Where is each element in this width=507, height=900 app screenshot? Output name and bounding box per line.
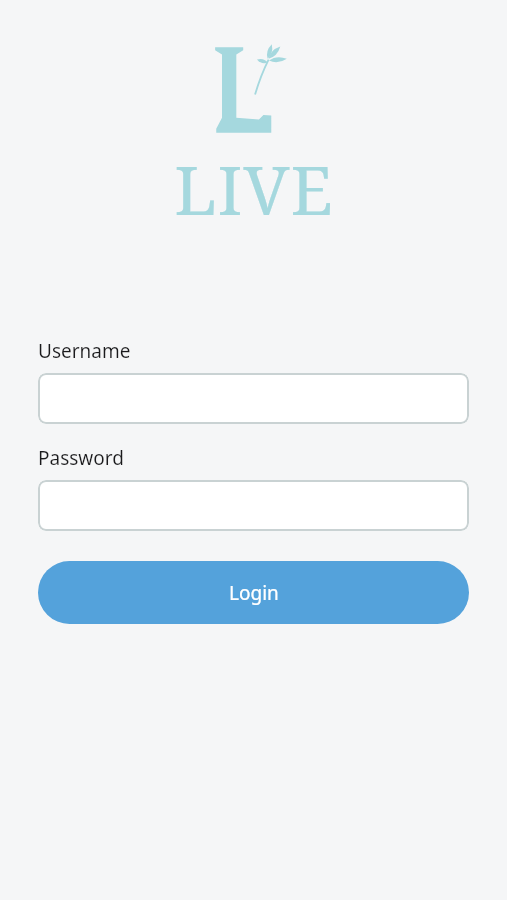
button[interactable] <box>38 373 469 424</box>
other: LIVE logo <box>200 44 308 136</box>
staticText: Password <box>38 445 124 471</box>
staticText: LIVE <box>174 142 334 235</box>
staticText: Username <box>38 338 131 364</box>
staticText: Login <box>229 580 279 606</box>
button[interactable] <box>38 480 469 531</box>
button[interactable]: Login <box>38 561 469 624</box>
